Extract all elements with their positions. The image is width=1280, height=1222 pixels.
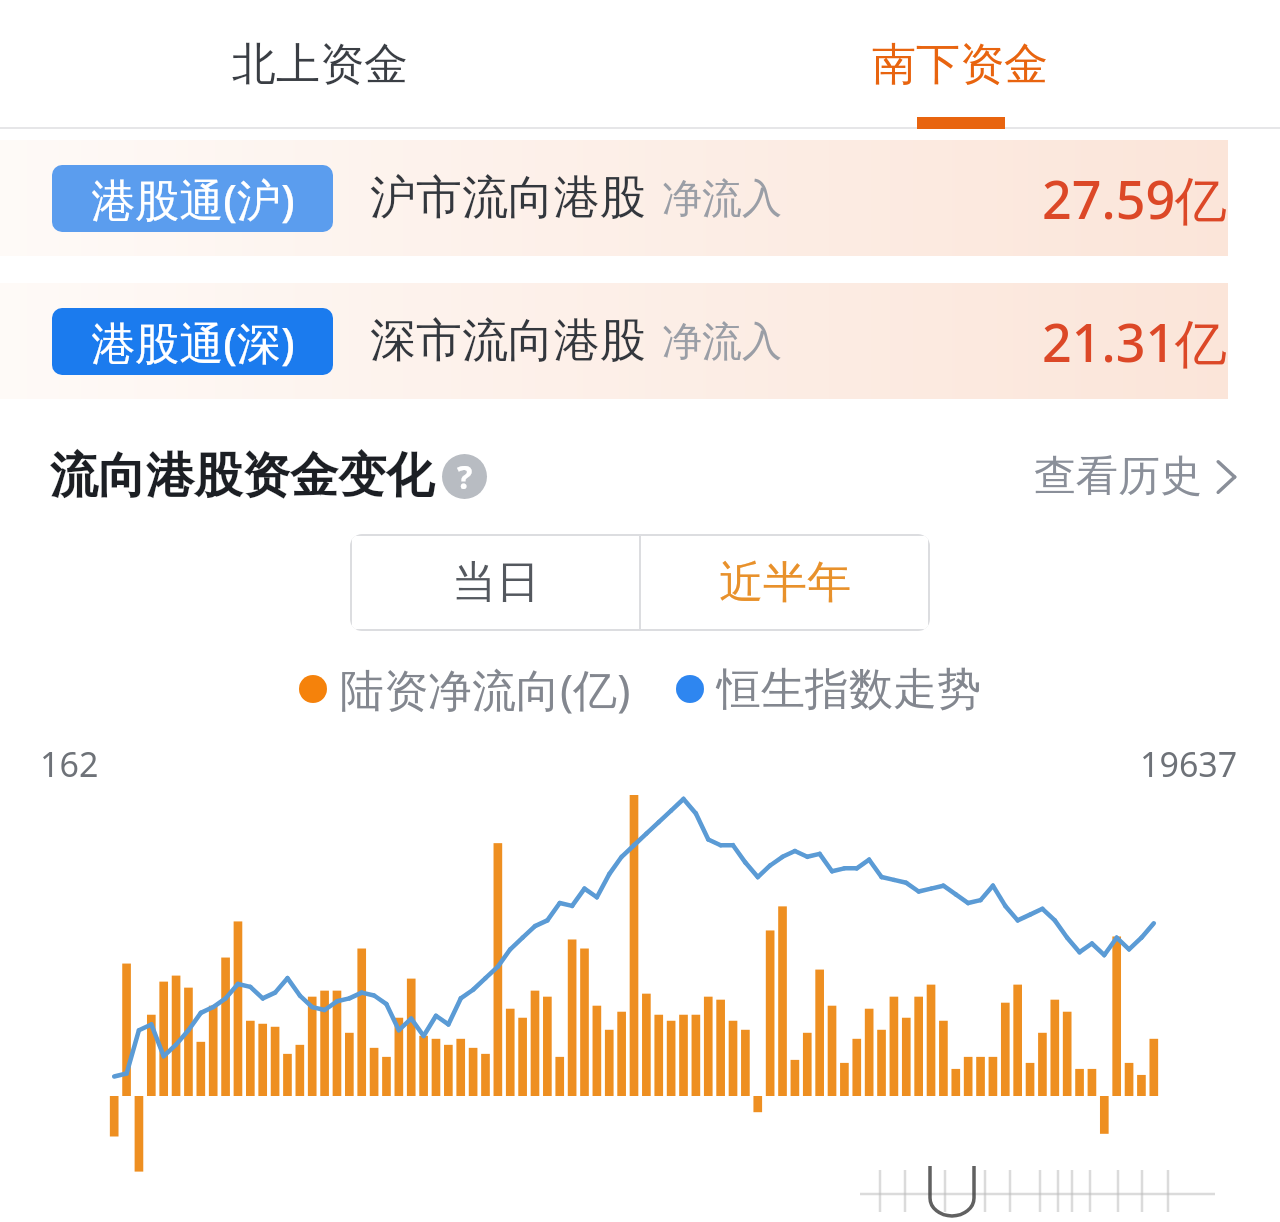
- staticText: 北上资金: [232, 37, 408, 92]
- button[interactable]: 北上资金: [0, 0, 640, 129]
- button[interactable]: 港股通(深): [0, 283, 1228, 399]
- button[interactable]: 查看历史: [1034, 450, 1238, 503]
- staticText: 27.59亿: [1042, 163, 1228, 234]
- staticText: 港股通(深): [91, 312, 295, 372]
- staticText: 南下资金: [872, 37, 1048, 92]
- staticText: ?: [457, 455, 473, 499]
- staticText: 流向港股资金变化: [50, 446, 434, 506]
- staticText: 21.31亿: [1042, 306, 1228, 377]
- button[interactable]: 当日: [352, 536, 639, 629]
- staticText: 近半年: [719, 555, 851, 610]
- staticText: 陆资净流向(亿): [340, 659, 631, 719]
- staticText: 净流入: [662, 316, 782, 366]
- staticText: 162: [40, 741, 99, 787]
- button[interactable]: 近半年: [641, 536, 928, 629]
- button[interactable]: 帮助说明: [442, 454, 487, 499]
- staticText: 恒生指数走势: [717, 662, 981, 717]
- staticText: 当日: [452, 555, 540, 610]
- staticText: 查看历史: [1034, 450, 1202, 503]
- button[interactable]: 南下资金: [640, 0, 1280, 129]
- staticText: 深市流向港股: [370, 312, 646, 370]
- staticText: 港股通(沪): [91, 169, 295, 229]
- staticText: 净流入: [662, 173, 782, 223]
- staticText: 沪市流向港股: [370, 169, 646, 227]
- button[interactable]: 港股通(沪): [0, 140, 1228, 256]
- staticText: 19637: [1140, 741, 1238, 787]
